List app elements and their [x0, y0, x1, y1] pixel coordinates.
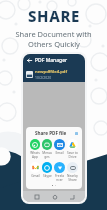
- button[interactable]: Back: [67, 192, 76, 201]
- button[interactable]: Home: [50, 192, 59, 201]
- staticText: Save to Drive: [67, 151, 78, 159]
- staticText: Share PDF file: [35, 130, 67, 136]
- button[interactable]: Email: [53, 139, 66, 155]
- button[interactable]: Skype: [41, 162, 53, 178]
- staticText: Others Quickly: [28, 39, 80, 49]
- button[interactable]: Freelancer: [53, 162, 66, 182]
- staticText: Freelancer: [54, 174, 65, 182]
- button[interactable]: Back: [26, 57, 33, 64]
- button[interactable]: More options: [74, 131, 79, 136]
- button[interactable]: Messages: [41, 139, 53, 159]
- staticText: Nearby Share: [67, 174, 78, 182]
- staticText: PDF Manager: [35, 57, 68, 64]
- staticText: WhatsApp: [30, 151, 40, 159]
- staticText: Email: [55, 151, 64, 155]
- staticText: newpdffile4.pdf: [35, 69, 68, 75]
- button[interactable]: Nearby Share: [66, 162, 79, 182]
- staticText: Share Document with: [15, 29, 92, 39]
- staticText: Messages: [42, 151, 52, 159]
- button[interactable]: Save to Drive: [66, 139, 79, 159]
- button[interactable]: WhatsApp: [29, 139, 41, 159]
- button[interactable]: Gmail: [29, 162, 41, 178]
- staticText: 10/2/2020: [35, 75, 52, 80]
- staticText: SHARE: [28, 6, 80, 26]
- staticText: Gmail: [31, 174, 40, 178]
- button[interactable]: Recents: [32, 192, 41, 201]
- button[interactable]: newpdffile4.pdf: [23, 67, 85, 82]
- staticText: Skype: [43, 174, 52, 178]
